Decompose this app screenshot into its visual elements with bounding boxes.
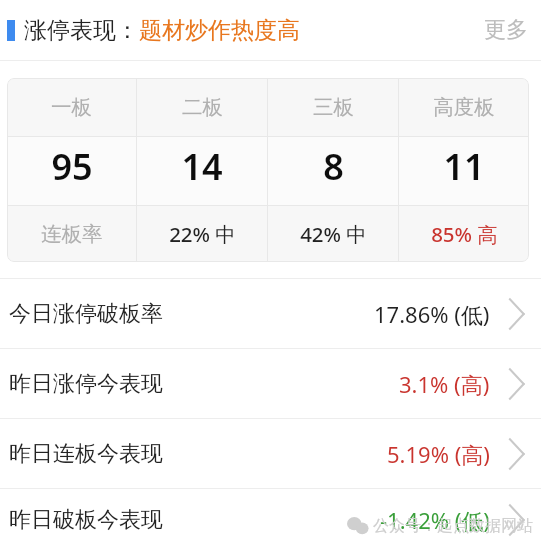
other: View details [508, 504, 524, 536]
staticText: 42% 中 [300, 220, 367, 248]
staticText: 三板 [313, 94, 354, 120]
staticText: 5.19% (高) [387, 439, 490, 469]
staticText: 8 [323, 142, 344, 191]
staticText: 昨日连板今表现 [9, 440, 163, 468]
staticText: 11 [443, 142, 485, 191]
button[interactable]: 昨日涨停今表现 [0, 349, 541, 419]
other: View details [508, 438, 524, 470]
other: View details [508, 298, 524, 330]
button[interactable]: 昨日破板今表现 [0, 489, 541, 551]
staticText: 85% 高 [431, 220, 498, 248]
staticText: 涨停表现：题材炒作热度高 [24, 16, 300, 45]
staticText: 今日涨停破板率 [9, 300, 163, 328]
staticText: 高度板 [433, 94, 495, 120]
staticText: 更多 [484, 16, 528, 44]
staticText: 连板率 [41, 221, 103, 247]
button[interactable]: 昨日连板今表现 [0, 419, 541, 489]
staticText: 95 [51, 142, 93, 191]
staticText: 昨日涨停今表现 [9, 370, 163, 398]
other: View details [508, 368, 524, 400]
staticText: 公众号：起点数据网站 [373, 516, 533, 536]
staticText: 二板 [182, 94, 223, 120]
button[interactable]: 更多 [471, 8, 541, 52]
button[interactable]: 今日涨停破板率 [0, 279, 541, 349]
staticText: 一板 [51, 94, 92, 120]
staticText: 22% 中 [169, 220, 236, 248]
staticText: 昨日破板今表现 [9, 506, 163, 534]
staticText: 3.1% (高) [399, 369, 490, 399]
staticText: -1.42% (低) [380, 505, 490, 535]
staticText: 14 [181, 142, 223, 191]
staticText: 17.86% (低) [374, 299, 490, 329]
